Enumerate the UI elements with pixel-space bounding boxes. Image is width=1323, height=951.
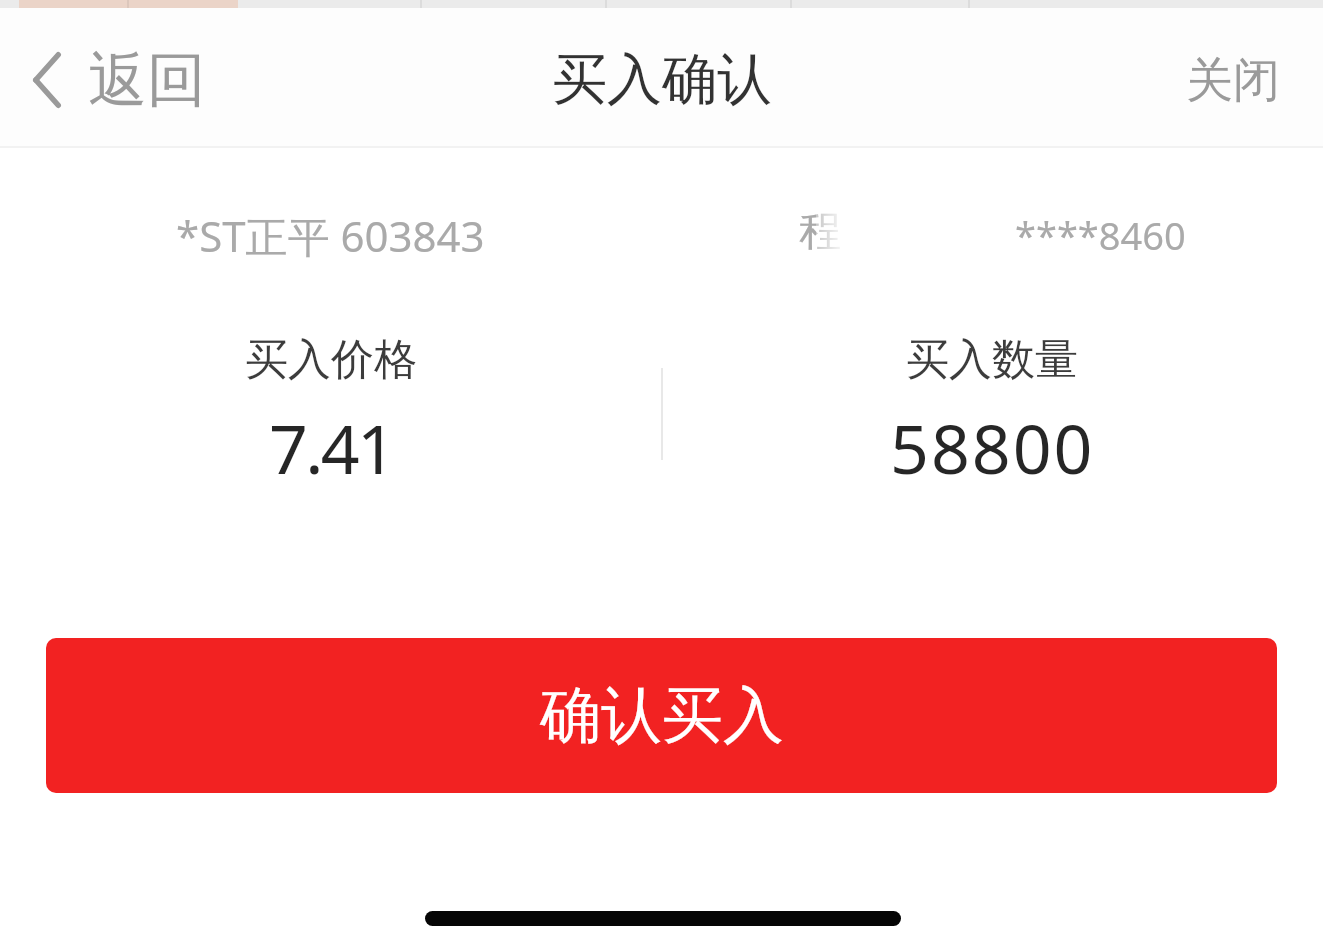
staticText: 程 — [799, 205, 841, 258]
staticText: 买入确认 — [552, 45, 772, 114]
button[interactable]: Back — [0, 23, 230, 137]
staticText: 确认买入 — [540, 677, 784, 754]
staticText: 58800 — [890, 401, 1095, 481]
staticText: 关闭 — [1186, 51, 1280, 110]
button[interactable]: 确认买入 — [46, 638, 1277, 793]
button[interactable]: 关闭 — [1136, 25, 1323, 136]
staticText: 买入数量 — [906, 333, 1078, 387]
staticText: 7.41 — [269, 401, 394, 481]
staticText: 返回 — [88, 43, 206, 117]
staticText: 买入价格 — [245, 333, 417, 387]
staticText: ****8460 — [1015, 209, 1186, 261]
other: Back — [33, 52, 61, 108]
staticText: *ST正平 603843 — [176, 207, 485, 264]
